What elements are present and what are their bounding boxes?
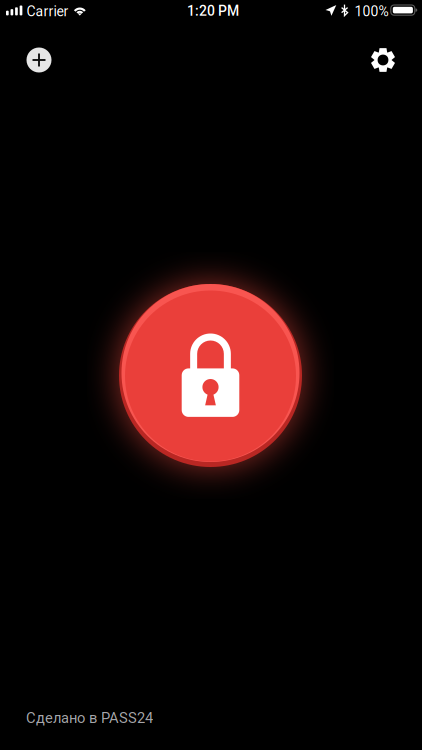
staticText: Сделано в PASS24 — [26, 709, 153, 727]
staticText: 1:20 PM — [187, 3, 239, 19]
button[interactable]: Settings — [361, 38, 405, 82]
button[interactable]: Lock — [119, 284, 302, 467]
staticText: 100% — [354, 3, 388, 20]
button[interactable]: Add — [17, 38, 61, 82]
staticText: Carrier — [26, 3, 68, 20]
